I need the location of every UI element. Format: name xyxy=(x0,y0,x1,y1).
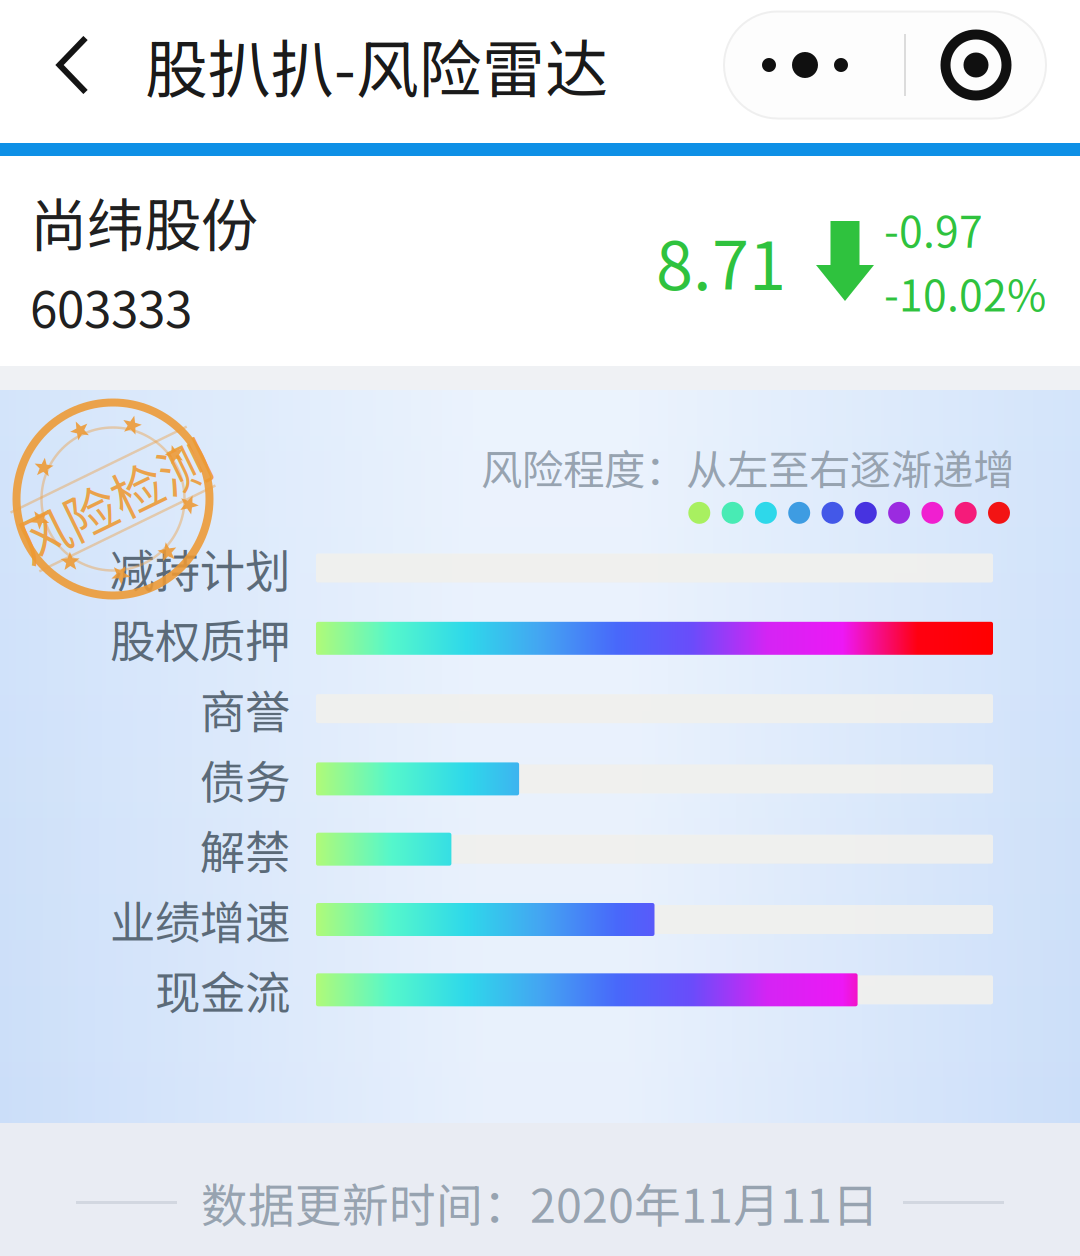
staticText: -10.02% xyxy=(884,262,1046,324)
staticText: 8.71 xyxy=(656,213,786,309)
staticText: 现金流 xyxy=(155,957,290,1023)
staticText: 数据更新时间：2020年11月11日 xyxy=(201,1169,879,1236)
staticText: 解禁 xyxy=(200,816,290,882)
staticText: 风险检测 xyxy=(9,461,217,537)
button[interactable]: More options xyxy=(724,11,1046,118)
button[interactable]: Back xyxy=(0,4,145,126)
staticText: 尚纬股份 xyxy=(30,180,258,263)
staticText: 风险程度：从左至右逐渐递增 xyxy=(481,437,1014,497)
staticText: -0.97 xyxy=(884,198,983,260)
staticText: 603333 xyxy=(30,271,192,342)
staticText: 减持计划 xyxy=(110,535,290,601)
staticText: 业绩增速 xyxy=(110,887,290,952)
staticText: 商誉 xyxy=(200,676,290,741)
staticText: 股权质押 xyxy=(110,605,290,671)
staticText: 股扒扒-风险雷达 xyxy=(145,20,608,110)
staticText: 债务 xyxy=(200,746,290,812)
